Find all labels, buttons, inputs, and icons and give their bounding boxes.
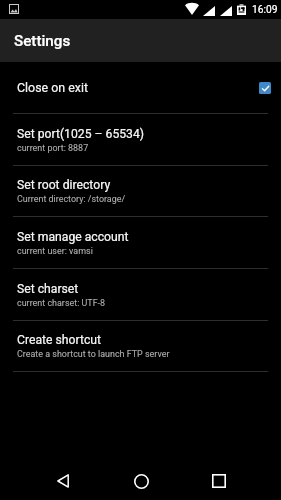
- staticText: Set manage account: [17, 230, 129, 244]
- button[interactable]: Back: [43, 459, 83, 500]
- staticText: Settings: [14, 32, 71, 50]
- button[interactable]: Set charset: [0, 269, 281, 320]
- staticText: Create a shortcut to launch FTP server: [17, 349, 170, 359]
- button[interactable]: Recent apps: [199, 459, 239, 500]
- button[interactable]: Home: [121, 459, 161, 500]
- staticText: Set charset: [17, 282, 79, 296]
- button[interactable]: Create shortcut: [0, 321, 281, 371]
- staticText: current port: 8887: [17, 143, 89, 153]
- staticText: Set root directory: [17, 178, 111, 192]
- staticText: Create shortcut: [17, 333, 101, 347]
- staticText: Set port(1025 – 65534): [17, 127, 145, 141]
- staticText: current charset: UTF-8: [17, 298, 106, 308]
- button[interactable]: Set root directory: [0, 166, 281, 216]
- staticText: current user: vamsi: [17, 246, 93, 256]
- staticText: 16:09: [252, 4, 278, 16]
- button[interactable]: Set port(1025 – 65534): [0, 114, 281, 165]
- staticText: Current directory: /storage/: [17, 194, 126, 204]
- button[interactable]: Set manage account: [0, 217, 281, 268]
- staticText: Close on exit: [17, 80, 259, 95]
- button[interactable]: Close on exit: [0, 62, 281, 113]
